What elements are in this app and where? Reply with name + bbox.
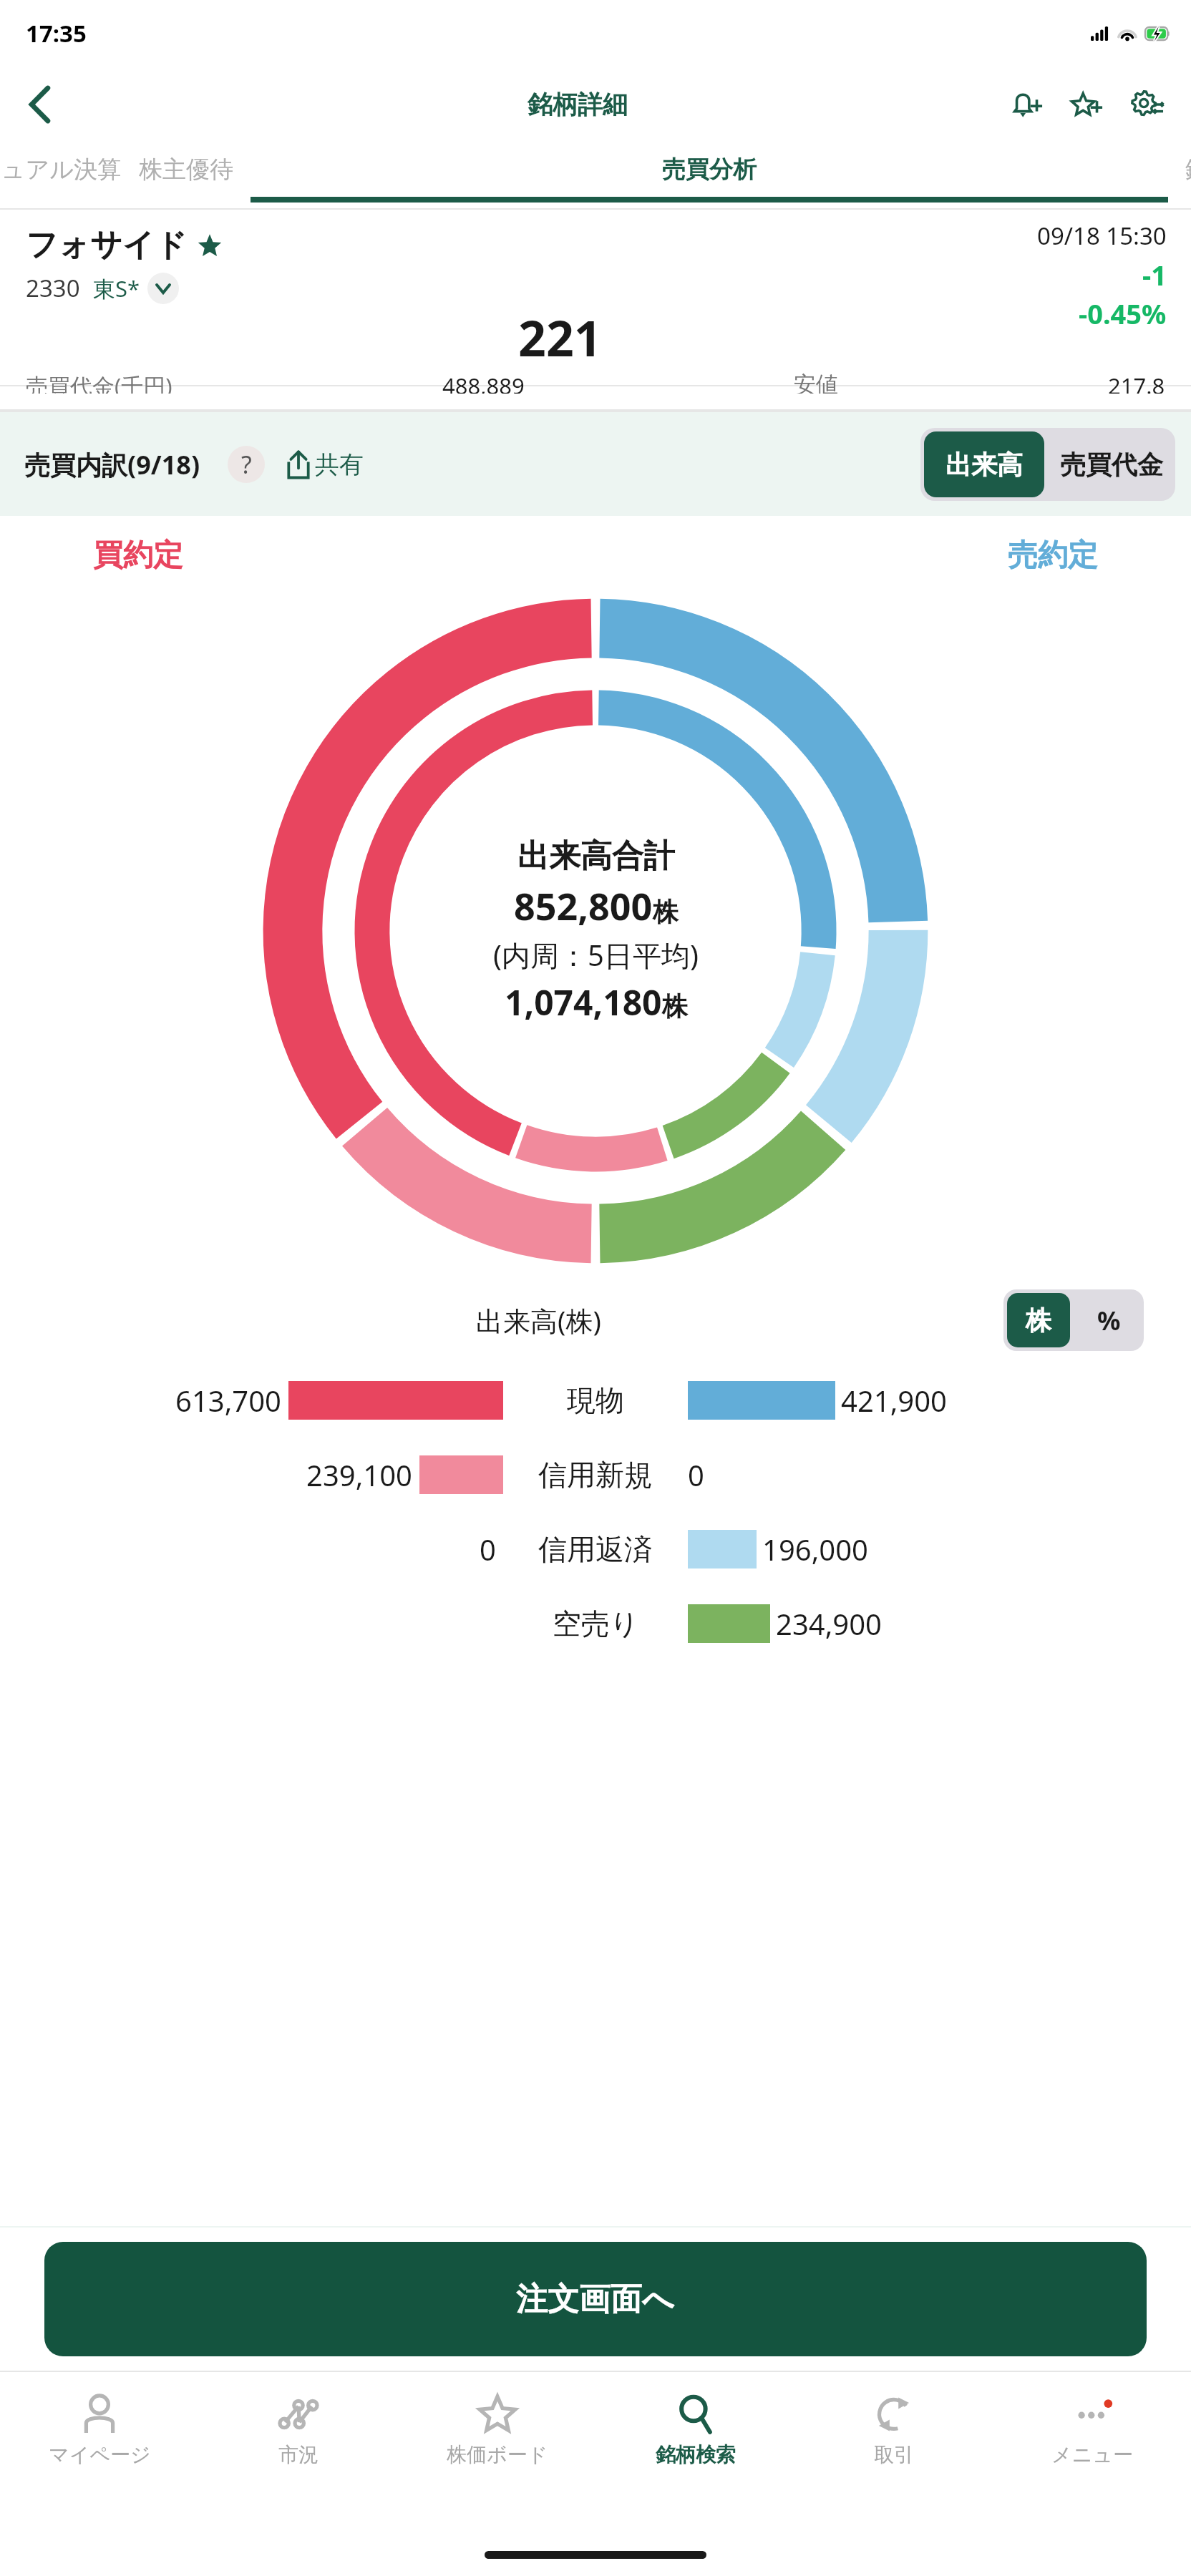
staticText: 東S* bbox=[93, 273, 140, 303]
staticText: 取引 bbox=[874, 2442, 914, 2467]
staticText: 出来高 bbox=[945, 449, 1023, 481]
staticText: 市況 bbox=[278, 2442, 319, 2467]
button[interactable]: 株主優待 bbox=[139, 142, 233, 210]
staticText: 196,000 bbox=[762, 1530, 868, 1568]
staticText: フォサイド bbox=[26, 225, 188, 265]
staticText: 安値 bbox=[794, 371, 838, 394]
staticText: 17:35 bbox=[26, 17, 87, 49]
staticText: (内周：5日平均) bbox=[493, 935, 699, 975]
button[interactable]: Add to favorites bbox=[1056, 74, 1117, 135]
staticText: 空売り bbox=[553, 1606, 639, 1641]
staticText: 0 bbox=[480, 1530, 496, 1568]
staticText: 株 bbox=[1026, 1304, 1051, 1337]
button[interactable]: 注文画面へ bbox=[44, 2242, 1147, 2356]
staticText: 1,074,180 bbox=[505, 979, 662, 1025]
staticText: -0.45% bbox=[1079, 295, 1167, 332]
staticText: 234,900 bbox=[776, 1604, 882, 1643]
staticText: 銘柄詳細 bbox=[528, 89, 628, 120]
staticText: 239,100 bbox=[306, 1455, 412, 1494]
staticText: 売買代金 bbox=[1060, 449, 1163, 481]
staticText: 銘柄検索 bbox=[656, 2442, 736, 2467]
button[interactable]: 空売り bbox=[0, 1586, 1191, 1661]
button[interactable]: 銘柄検索 bbox=[596, 2372, 794, 2533]
staticText: 221 bbox=[518, 304, 602, 371]
button[interactable]: 取引 bbox=[794, 2372, 993, 2533]
staticText: ? bbox=[241, 448, 252, 481]
staticText: 488,889 bbox=[442, 371, 525, 394]
staticText: 売買代金(千円) bbox=[26, 371, 172, 394]
staticText: 信用返済 bbox=[538, 1531, 653, 1567]
staticText: 09/18 15:30 bbox=[1037, 220, 1167, 252]
button[interactable]: Add alert bbox=[996, 74, 1056, 135]
button[interactable]: Settings bbox=[1117, 74, 1177, 135]
button[interactable]: % bbox=[1074, 1289, 1144, 1351]
staticText: ジュアル決算 bbox=[0, 155, 122, 185]
staticText: 0 bbox=[688, 1455, 704, 1494]
button[interactable]: Back bbox=[13, 77, 67, 132]
button[interactable]: 0 bbox=[0, 1512, 1191, 1586]
staticText: % bbox=[1097, 1303, 1121, 1338]
staticText: 株価ボード bbox=[447, 2442, 548, 2467]
staticText: 株主優待 bbox=[139, 155, 233, 185]
button[interactable]: 売買代金 bbox=[1048, 428, 1175, 501]
staticText: 株 bbox=[662, 990, 688, 1023]
staticText: 株 bbox=[653, 896, 679, 928]
staticText: 売約定 bbox=[1008, 537, 1098, 575]
staticText: 613,700 bbox=[175, 1381, 281, 1420]
button[interactable]: 株 bbox=[1007, 1293, 1070, 1347]
staticText: 注文画面へ bbox=[516, 2280, 675, 2319]
staticText: 買約定 bbox=[93, 537, 183, 575]
button[interactable]: ジュアル決算 bbox=[0, 142, 122, 210]
button[interactable]: 売買分析 bbox=[251, 142, 1168, 210]
staticText: 現物 bbox=[567, 1382, 624, 1418]
staticText: 421,900 bbox=[841, 1381, 947, 1420]
button[interactable]: Expand market bbox=[147, 273, 179, 304]
button[interactable]: 239,100 bbox=[0, 1438, 1191, 1512]
staticText: 出来高合計 bbox=[517, 836, 675, 876]
button[interactable]: メニュー bbox=[993, 2372, 1191, 2533]
staticText: 共有 bbox=[315, 449, 364, 480]
button[interactable]: 共有 bbox=[285, 449, 364, 480]
button[interactable]: マイページ bbox=[0, 2372, 199, 2533]
staticText: 2330 bbox=[26, 272, 80, 304]
staticText: -1 bbox=[1142, 256, 1167, 293]
button[interactable]: 株価ボード bbox=[398, 2372, 596, 2533]
staticText: 852,800 bbox=[514, 880, 653, 931]
staticText: メニュー bbox=[1051, 2442, 1133, 2467]
staticText: 売買内訳(9/18) bbox=[24, 447, 200, 482]
staticText: 売買分析 bbox=[662, 155, 757, 185]
staticText: 出来高(株) bbox=[476, 1302, 601, 1339]
staticText: マイページ bbox=[49, 2442, 151, 2467]
button[interactable]: Help bbox=[228, 446, 265, 483]
button[interactable]: 出来高 bbox=[924, 431, 1044, 497]
button[interactable]: 613,700 bbox=[0, 1363, 1191, 1438]
staticText: 217.8 bbox=[1108, 371, 1165, 394]
button[interactable]: 市況 bbox=[199, 2372, 398, 2533]
staticText: 信用新規 bbox=[538, 1457, 653, 1493]
